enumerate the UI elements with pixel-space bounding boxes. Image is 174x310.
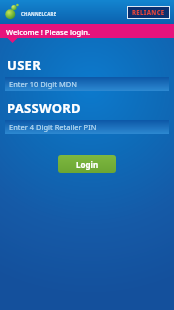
staticText: Enter 4 Digit Retailer PIN	[9, 122, 97, 132]
staticText: Login	[76, 159, 99, 170]
staticText: USER	[7, 56, 41, 74]
staticText: PASSWORD	[7, 99, 81, 117]
staticText: Welcome ! Please login.	[6, 27, 90, 37]
staticText: RELIANCE	[132, 9, 165, 17]
staticText: Enter 10 Digit MDN	[9, 79, 77, 89]
other: ChannelCare logo	[3, 2, 21, 22]
button[interactable]: Enter 10 Digit MDN	[5, 77, 169, 91]
staticText: CHANNELCARE	[21, 11, 57, 17]
button[interactable]: Enter 4 Digit Retailer PIN	[5, 120, 169, 134]
button[interactable]: Login	[58, 155, 116, 173]
